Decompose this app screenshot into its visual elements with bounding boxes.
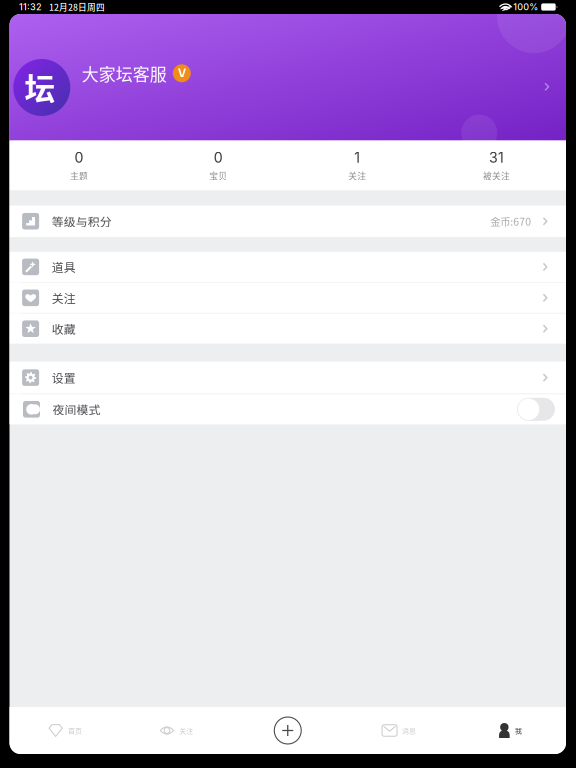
button[interactable]: 道具 xyxy=(9,252,566,282)
staticText: 12月28日周四 xyxy=(49,1,105,13)
staticText: 我 xyxy=(515,725,522,735)
button[interactable]: 设置 xyxy=(9,362,566,394)
staticText: 100% xyxy=(513,1,538,12)
button[interactable]: 1 xyxy=(288,140,427,190)
staticText: 消息 xyxy=(402,725,416,735)
button[interactable]: 首页 xyxy=(9,707,121,754)
button[interactable]: 夜间模式开关 xyxy=(517,398,555,421)
staticText: 0 xyxy=(214,149,223,166)
staticText: 设置 xyxy=(52,369,76,386)
staticText: 金币:670 xyxy=(490,214,531,229)
staticText: 首页 xyxy=(68,725,82,735)
button[interactable]: 0 xyxy=(149,140,288,190)
button[interactable]: 关注 xyxy=(121,707,232,754)
button[interactable]: 我 xyxy=(455,707,566,754)
staticText: 0 xyxy=(75,149,84,166)
button[interactable]: 31 xyxy=(427,140,566,190)
staticText: 31 xyxy=(489,149,504,166)
staticText: 1 xyxy=(354,149,360,166)
button[interactable]: 关注 xyxy=(9,283,566,313)
staticText: 收藏 xyxy=(52,320,76,337)
staticText: 关注 xyxy=(348,169,366,182)
staticText: 主题 xyxy=(70,169,88,182)
staticText: 关注 xyxy=(52,289,76,306)
button[interactable]: 发布 xyxy=(232,707,343,754)
staticText: 大家坛客服 xyxy=(82,61,167,85)
button[interactable]: 等级与积分 xyxy=(9,205,566,237)
staticText: 夜间模式 xyxy=(53,401,101,418)
staticText: 宝贝 xyxy=(209,169,227,182)
staticText: V xyxy=(178,66,186,80)
staticText: 道具 xyxy=(52,258,76,275)
staticText: 等级与积分 xyxy=(52,213,112,230)
staticText: 坛 xyxy=(25,64,56,109)
staticText: 被关注 xyxy=(483,169,510,182)
staticText: 关注 xyxy=(179,725,193,735)
button[interactable]: 坛 xyxy=(5,14,571,140)
staticText: 11:32 xyxy=(19,1,42,12)
button[interactable]: 消息 xyxy=(343,707,455,754)
button[interactable]: 0 xyxy=(9,140,149,190)
button[interactable]: 收藏 xyxy=(9,314,566,344)
